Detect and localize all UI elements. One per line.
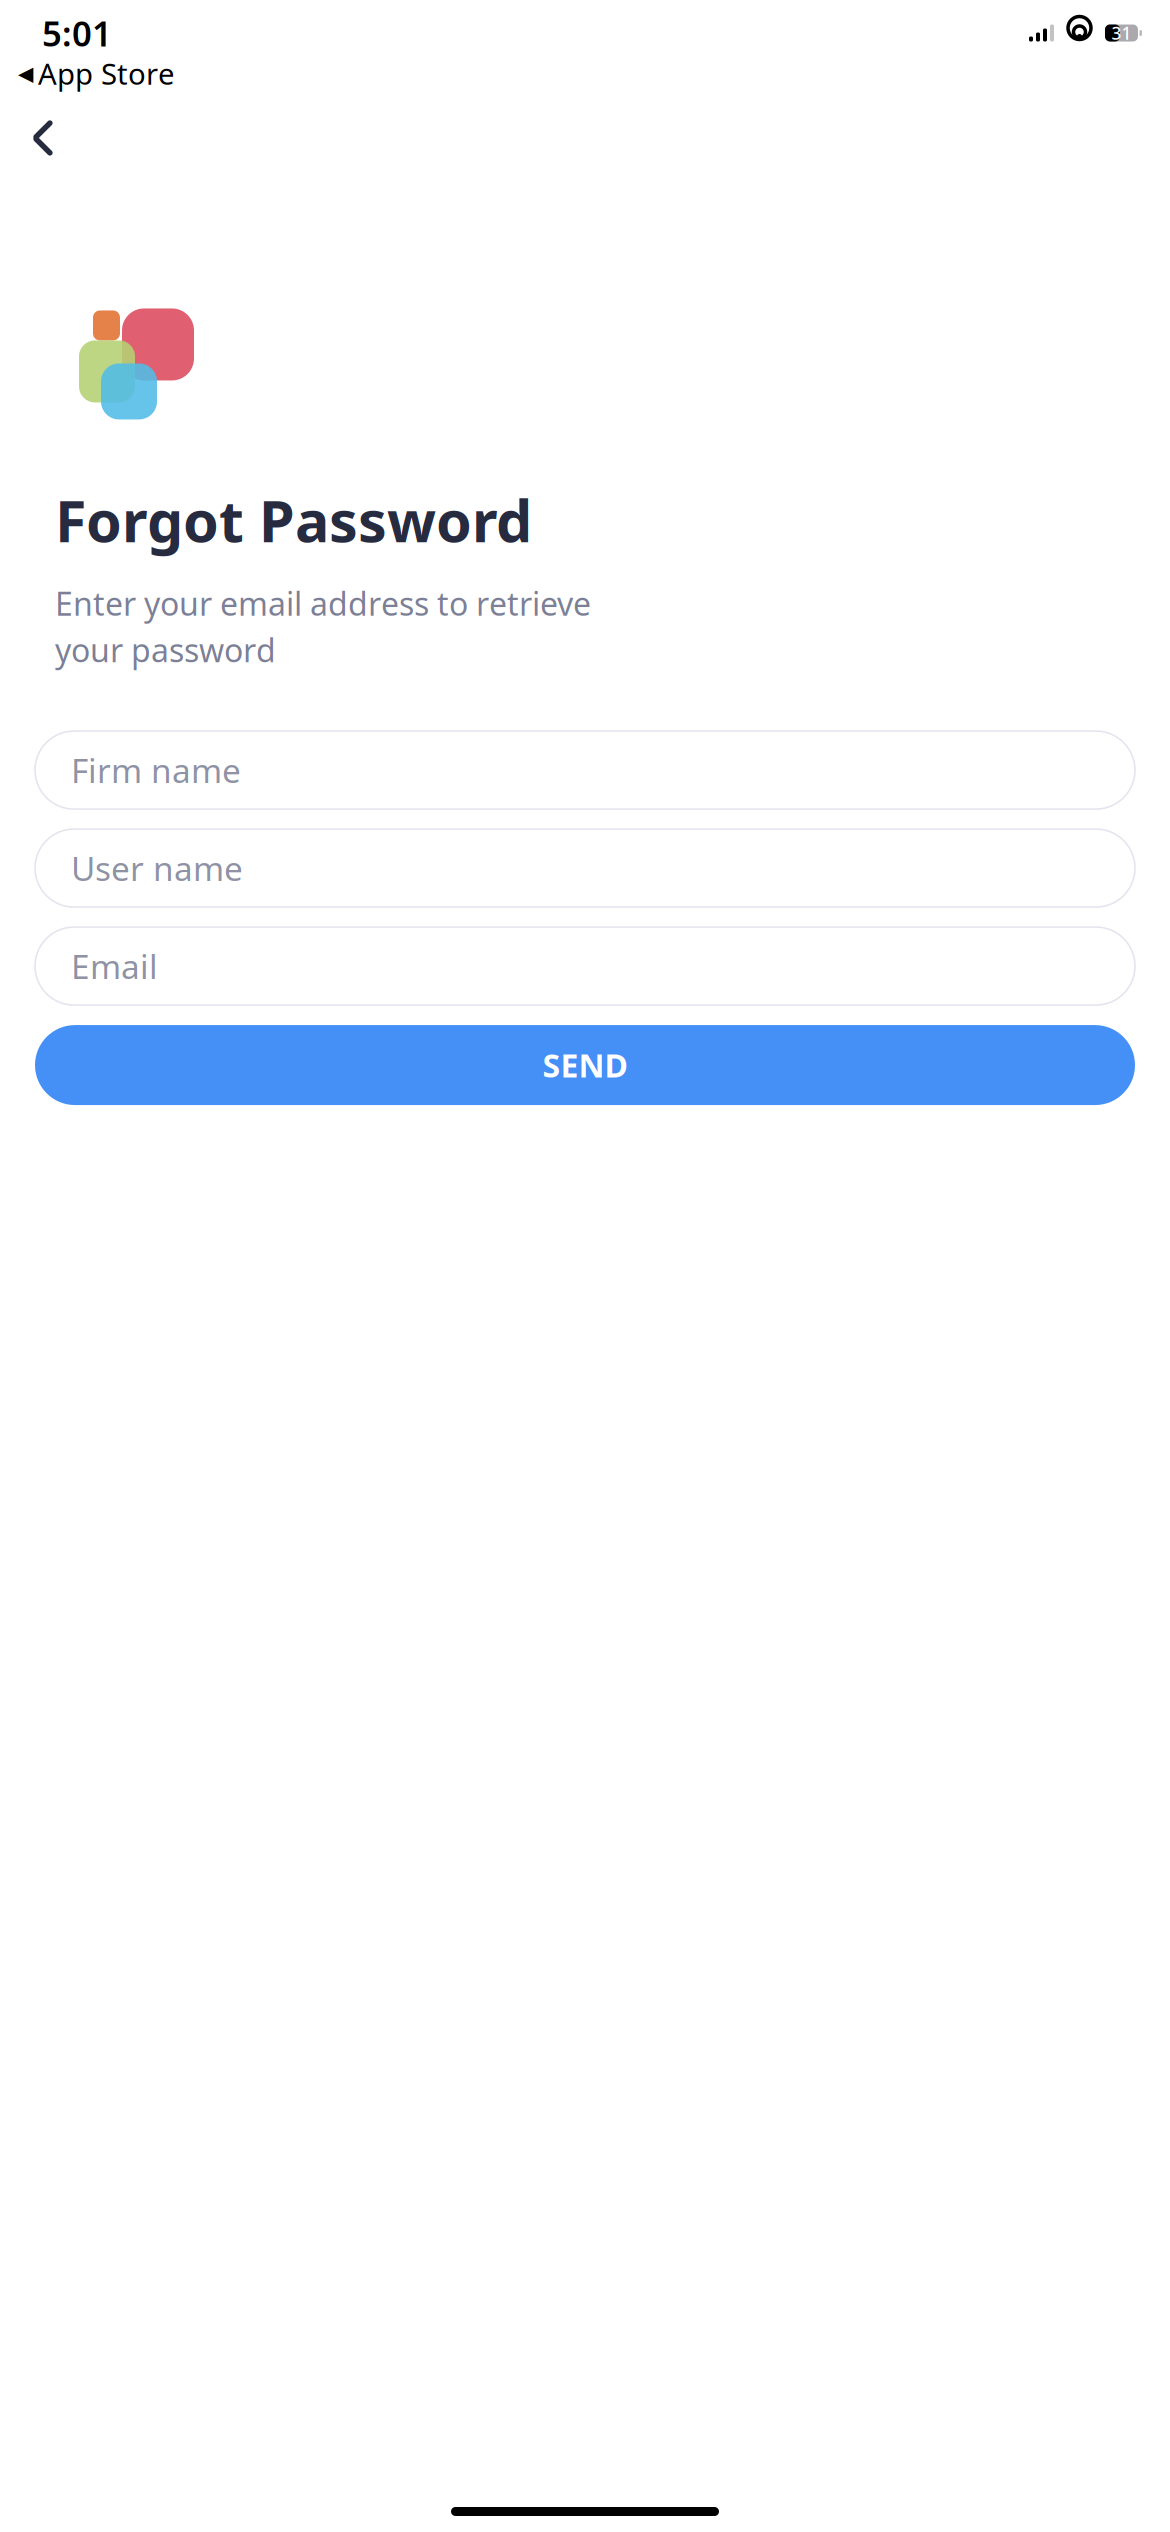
button[interactable]: ◀ bbox=[0, 50, 175, 93]
staticText: 5:01 bbox=[42, 10, 112, 56]
staticText: Forgot Password bbox=[55, 482, 532, 558]
button[interactable]: Email bbox=[35, 927, 1135, 1005]
staticText: Firm name bbox=[71, 748, 241, 792]
button[interactable]: SEND bbox=[35, 1025, 1135, 1105]
staticText: ◀ bbox=[18, 62, 33, 85]
staticText: 31 bbox=[1111, 21, 1131, 44]
button[interactable]: User name bbox=[35, 829, 1135, 907]
button[interactable]: Back bbox=[0, 93, 74, 169]
staticText: your password bbox=[55, 629, 276, 671]
staticText: Enter your email address to retrieve bbox=[55, 582, 591, 625]
button[interactable]: Firm name bbox=[35, 731, 1135, 809]
staticText: User name bbox=[71, 846, 243, 890]
staticText: Email bbox=[71, 944, 158, 988]
staticText: SEND bbox=[542, 1044, 627, 1086]
staticText: App Store bbox=[38, 54, 175, 93]
